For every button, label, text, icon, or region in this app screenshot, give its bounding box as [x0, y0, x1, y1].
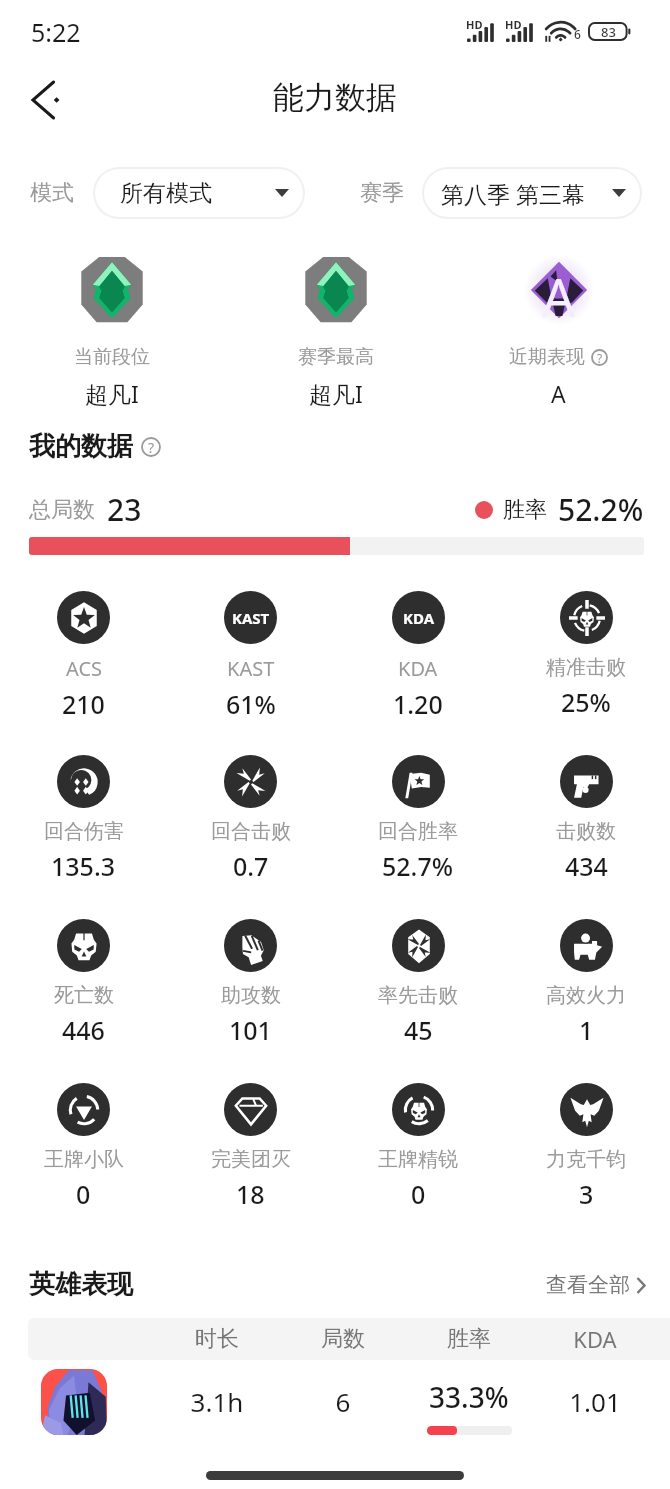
staticText: 434	[565, 849, 608, 883]
staticText: 胜率	[503, 496, 547, 524]
staticText: HD	[466, 17, 483, 32]
staticText: KDA	[403, 608, 435, 628]
staticText: 0.7	[233, 849, 269, 883]
staticText: 总局数	[29, 496, 95, 524]
button[interactable]: Back	[19, 72, 75, 128]
staticText: 23	[107, 489, 142, 530]
button[interactable]: 第八季 第三幕	[424, 169, 640, 217]
staticText: 王牌小队	[44, 1147, 124, 1172]
button[interactable]: 当前段位	[0, 257, 224, 409]
staticText: 61%	[226, 687, 276, 721]
button[interactable]: 击败数	[502, 755, 670, 883]
staticText: 英雄表现	[29, 1268, 133, 1301]
staticText: 6	[574, 26, 581, 42]
staticText: KDA	[532, 1324, 658, 1354]
staticText: ?	[597, 350, 603, 366]
button[interactable]: 回合伤害	[0, 755, 167, 883]
staticText: ?	[148, 438, 155, 457]
staticText: 能力数据	[273, 78, 397, 117]
staticText: 助攻数	[221, 983, 281, 1008]
staticText: 胜率	[406, 1325, 532, 1353]
staticText: 王牌精锐	[378, 1147, 458, 1172]
button[interactable]: KAST	[167, 591, 334, 721]
staticText: 时长	[154, 1325, 280, 1353]
staticText: 1	[579, 1013, 594, 1047]
staticText: 3	[579, 1177, 594, 1211]
staticText: 第八季 第三幕	[441, 178, 585, 209]
button[interactable]: 赛季最高	[224, 257, 447, 409]
button[interactable]: 助攻数	[167, 919, 334, 1047]
staticText: 135.3	[51, 849, 116, 883]
button[interactable]: KDA	[334, 591, 502, 721]
staticText: 局数	[280, 1325, 406, 1353]
button[interactable]: ACS	[0, 591, 167, 721]
staticText: 回合击败	[211, 819, 291, 844]
staticText: 回合胜率	[378, 819, 458, 844]
staticText: 83	[601, 23, 616, 40]
staticText: 超凡I	[85, 378, 139, 409]
staticText: 高效火力	[546, 983, 626, 1008]
staticText: 精准击败	[546, 655, 626, 680]
staticText: 5:22	[31, 15, 81, 49]
staticText: KAST	[227, 655, 275, 682]
button[interactable]: 精准击败	[502, 591, 670, 719]
staticText: 赛季	[360, 179, 404, 207]
staticText: A	[542, 261, 576, 327]
button[interactable]: 率先击败	[334, 919, 502, 1047]
staticText: 6	[280, 1384, 406, 1419]
staticText: 完美团灭	[211, 1147, 291, 1172]
staticText: 18	[236, 1177, 265, 1211]
staticText: 我的数据	[29, 430, 133, 463]
staticText: 查看全部	[546, 1272, 630, 1298]
staticText: 0	[76, 1177, 91, 1211]
staticText: 446	[62, 1013, 105, 1047]
staticText: 52.2%	[558, 489, 644, 530]
staticText: 当前段位	[74, 345, 150, 369]
staticText: 所有模式	[120, 179, 212, 208]
staticText: 近期表现	[509, 345, 585, 369]
staticText: 33.3%	[429, 1378, 509, 1416]
staticText: HD	[505, 17, 522, 32]
button[interactable]: 完美团灭	[167, 1083, 334, 1211]
staticText: A	[551, 378, 566, 409]
staticText: 率先击败	[378, 983, 458, 1008]
staticText: KDA	[398, 655, 438, 682]
button[interactable]: 所有模式	[95, 169, 303, 217]
staticText: ACS	[66, 655, 102, 682]
staticText: 101	[229, 1013, 272, 1047]
button[interactable]: 高效火力	[502, 919, 670, 1047]
staticText: 3.1h	[154, 1384, 280, 1419]
staticText: 0	[411, 1177, 426, 1211]
staticText: 模式	[30, 179, 74, 207]
staticText: 25%	[561, 685, 611, 719]
staticText: 1.20	[393, 687, 443, 721]
staticText: 210	[62, 687, 105, 721]
staticText: 52.7%	[382, 849, 454, 883]
button[interactable]: 王牌小队	[0, 1083, 167, 1211]
staticText: 力克千钧	[546, 1147, 626, 1172]
staticText: 赛季最高	[298, 345, 374, 369]
staticText: 击败数	[556, 819, 616, 844]
button[interactable]: 回合胜率	[334, 755, 502, 883]
button[interactable]: 死亡数	[0, 919, 167, 1047]
staticText: 45	[404, 1013, 433, 1047]
button[interactable]: 查看全部	[546, 1272, 646, 1298]
staticText: 死亡数	[54, 983, 114, 1008]
staticText: KAST	[232, 608, 270, 628]
button[interactable]: 王牌精锐	[334, 1083, 502, 1211]
button[interactable]: 回合击败	[167, 755, 334, 883]
button[interactable]: A	[447, 257, 670, 409]
staticText: 1.01	[532, 1384, 658, 1419]
button[interactable]: 3.1h	[0, 1360, 670, 1452]
button[interactable]: 力克千钧	[502, 1083, 670, 1211]
staticText: 回合伤害	[44, 819, 124, 844]
staticText: 超凡I	[309, 378, 363, 409]
